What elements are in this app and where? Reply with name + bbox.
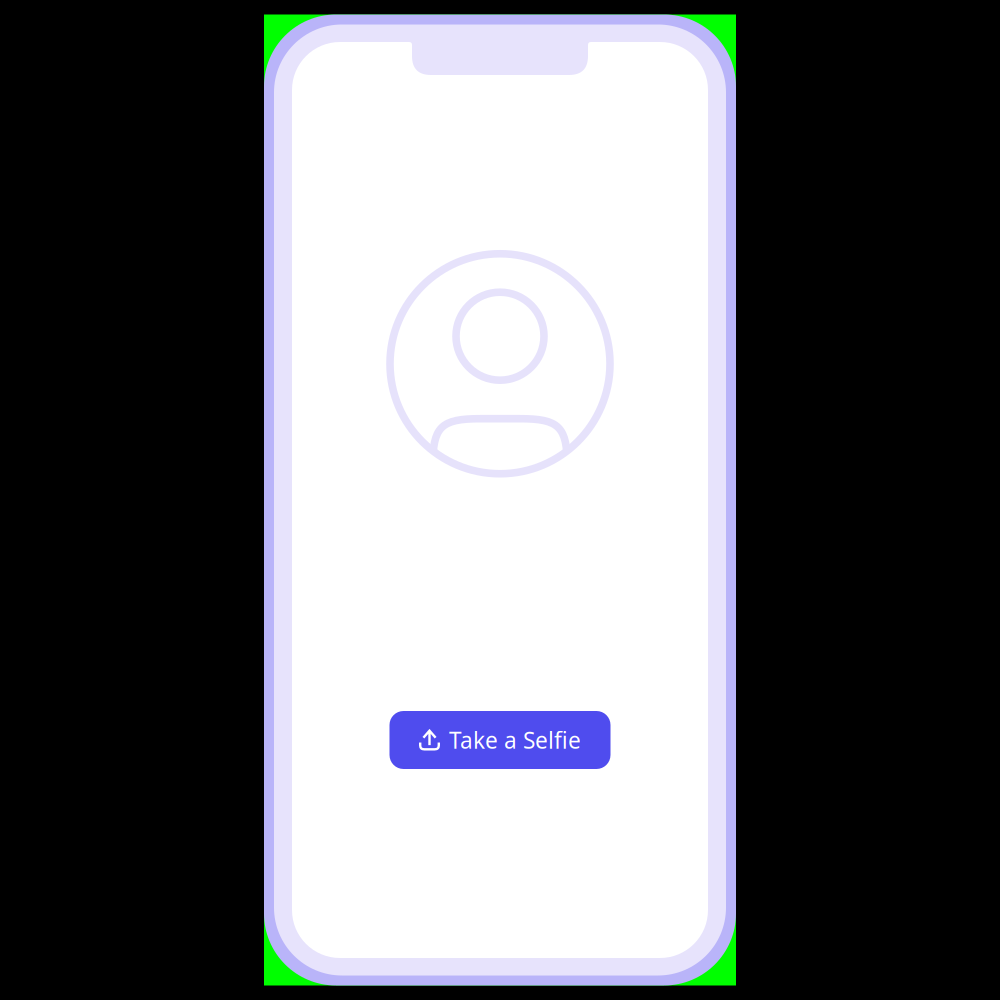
button[interactable]: Take a Selfie [389, 711, 610, 769]
staticText: Take a Selfie [449, 725, 581, 755]
